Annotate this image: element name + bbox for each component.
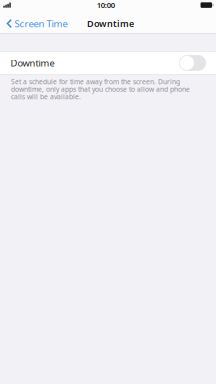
button[interactable]: Screen Time bbox=[0, 14, 76, 33]
staticText: Set a schedule for time away from the sc… bbox=[11, 78, 190, 100]
staticText: Downtime bbox=[11, 57, 55, 69]
staticText: 10:00 bbox=[97, 0, 115, 10]
staticText: Screen Time bbox=[15, 17, 68, 30]
button[interactable]: Downtime, off bbox=[179, 55, 206, 71]
button[interactable]: Downtime bbox=[0, 52, 216, 74]
staticText: Downtime bbox=[87, 17, 134, 29]
